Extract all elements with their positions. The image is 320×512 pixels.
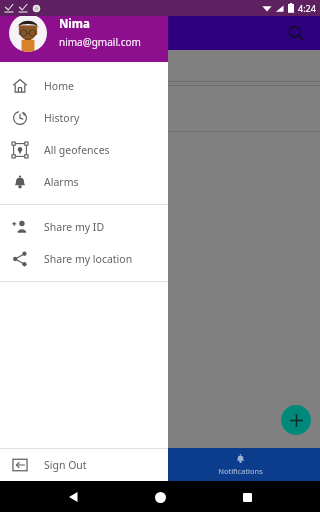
button[interactable]: Recents bbox=[234, 484, 260, 510]
button[interactable]: All geofences bbox=[0, 134, 168, 166]
staticText: Share my location bbox=[44, 252, 133, 266]
button[interactable]: Nima bbox=[0, 0, 168, 62]
staticText: All geofences bbox=[44, 143, 110, 157]
staticText: Sign Out bbox=[44, 458, 87, 472]
button[interactable]: Sign Out bbox=[0, 449, 168, 481]
button[interactable]: Home bbox=[147, 484, 173, 510]
button[interactable]: Add bbox=[281, 405, 311, 435]
button[interactable]: Alarms bbox=[0, 166, 168, 198]
staticText: nima@gmail.com bbox=[59, 35, 141, 49]
button[interactable]: Share my location bbox=[0, 243, 168, 275]
button[interactable]: Search bbox=[282, 19, 310, 47]
button[interactable]: Contacts bbox=[0, 448, 160, 481]
staticText: Notifications bbox=[218, 466, 263, 476]
staticText: Nima bbox=[59, 16, 90, 32]
button[interactable]: Notifications bbox=[160, 448, 320, 481]
staticText: History bbox=[44, 111, 80, 125]
button[interactable]: Share my ID bbox=[0, 211, 168, 243]
staticText: 4:24 bbox=[298, 2, 316, 14]
staticText: Home bbox=[44, 79, 74, 93]
staticText: Contacts bbox=[65, 466, 96, 476]
staticText: Share my ID bbox=[44, 220, 105, 234]
button[interactable]: History bbox=[0, 102, 168, 134]
staticText: Alarms bbox=[44, 175, 79, 189]
button[interactable]: Back bbox=[61, 484, 87, 510]
button[interactable]: Home bbox=[0, 70, 168, 102]
